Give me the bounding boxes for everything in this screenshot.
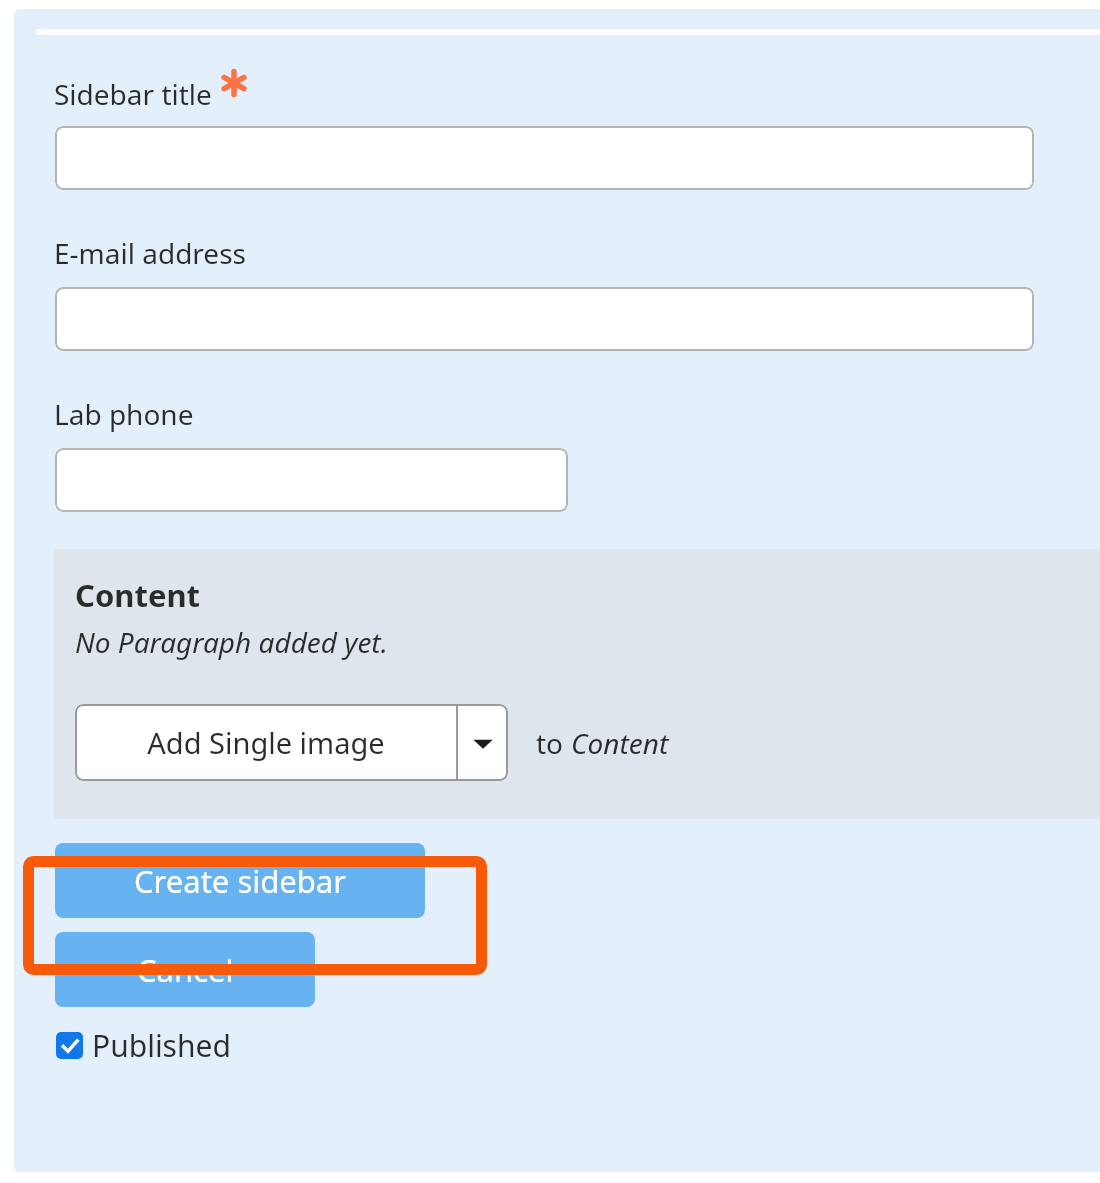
button[interactable] [55,448,568,512]
staticText: E-mail address [54,234,246,272]
button[interactable]: Add Single image [75,704,508,781]
other: Show more options [458,704,508,781]
staticText: Published [92,1025,231,1066]
staticText: Add Single image [147,723,385,762]
staticText: Create sidebar [134,860,347,902]
button[interactable]: Cancel [55,932,315,1007]
staticText: to [536,724,571,762]
button[interactable]: Create sidebar [55,843,425,918]
staticText: Sidebar title [54,75,212,113]
staticText: Lab phone [54,395,194,433]
staticText: Cancel [137,949,234,991]
button[interactable]: Published [56,1025,231,1066]
staticText: No Paragraph added yet. [75,623,388,661]
button[interactable] [55,126,1034,190]
staticText: Content [571,724,669,762]
button[interactable] [55,287,1034,351]
staticText: Content [75,574,200,616]
